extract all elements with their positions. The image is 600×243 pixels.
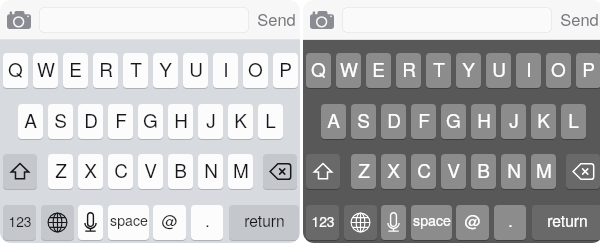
button[interactable]: F (108, 104, 133, 139)
button[interactable]: G (138, 104, 163, 139)
staticText: E (372, 55, 385, 82)
button[interactable]: P (273, 53, 298, 88)
button[interactable]: W (336, 53, 361, 88)
button[interactable]: J (501, 104, 526, 139)
staticText: M (233, 156, 249, 183)
staticText: E (69, 55, 82, 82)
button[interactable]: T (426, 53, 451, 88)
staticText: W (340, 55, 358, 82)
button[interactable]: U (486, 53, 511, 88)
button[interactable]: E (63, 53, 88, 88)
staticText: Z (55, 156, 67, 183)
button[interactable]: C (108, 154, 133, 189)
button[interactable]: N (501, 154, 526, 189)
staticText: return (547, 209, 588, 231)
button[interactable]: Change keyboard (41, 205, 74, 240)
staticText: J (206, 106, 216, 133)
staticText: H (477, 106, 491, 133)
button[interactable]: Camera (310, 11, 334, 29)
staticText: Q (8, 55, 23, 82)
button[interactable]: X (78, 154, 103, 189)
button[interactable]: Y (456, 53, 481, 88)
button[interactable]: G (441, 104, 466, 139)
button[interactable]: M (531, 154, 556, 189)
button[interactable]: R (93, 53, 118, 88)
button[interactable]: 123 (306, 205, 339, 240)
button[interactable]: Change keyboard (344, 205, 377, 240)
button[interactable]: H (471, 104, 496, 139)
button[interactable]: Q (306, 53, 331, 88)
button[interactable]: C (411, 154, 436, 189)
button[interactable]: Z (48, 154, 73, 189)
button[interactable]: Q (3, 53, 28, 88)
button[interactable]: . (494, 205, 526, 240)
staticText: P (279, 55, 292, 82)
button[interactable]: H (168, 104, 193, 139)
button[interactable]: I (213, 53, 238, 88)
button[interactable]: return (229, 205, 299, 240)
button[interactable]: A (18, 104, 43, 139)
button[interactable]: K (531, 104, 556, 139)
staticText: 123 (8, 211, 32, 231)
button[interactable]: Dictation (78, 205, 103, 240)
button[interactable]: U (183, 53, 208, 88)
button[interactable]: K (228, 104, 253, 139)
staticText: H (174, 106, 188, 133)
button[interactable]: . (191, 205, 223, 240)
staticText: Z (358, 156, 370, 183)
button[interactable]: L (258, 104, 283, 139)
staticText: D (387, 106, 401, 133)
button[interactable]: D (381, 104, 406, 139)
button[interactable]: 123 (3, 205, 36, 240)
button[interactable]: return (532, 205, 600, 240)
button[interactable]: N (198, 154, 223, 189)
button[interactable]: B (168, 154, 193, 189)
button[interactable]: W (33, 53, 58, 88)
button[interactable]: Shift (306, 154, 340, 189)
button[interactable]: Shift (3, 154, 37, 189)
button[interactable]: I (516, 53, 541, 88)
button[interactable]: space (411, 205, 452, 240)
button[interactable]: Camera (7, 11, 31, 29)
button[interactable]: X (381, 154, 406, 189)
button[interactable]: Backspace (566, 154, 600, 189)
button[interactable]: S (351, 104, 376, 139)
staticText: V (447, 156, 460, 183)
button[interactable]: O (243, 53, 268, 88)
button[interactable]: Send (557, 6, 600, 34)
button[interactable]: V (138, 154, 163, 189)
staticText: R (99, 55, 113, 82)
staticText: I (526, 55, 532, 82)
button[interactable]: Backspace (263, 154, 297, 189)
button[interactable]: F (411, 104, 436, 139)
button[interactable]: E (366, 53, 391, 88)
staticText: M (536, 156, 552, 183)
button[interactable]: @ (456, 205, 489, 240)
staticText: Y (159, 55, 172, 82)
staticText: K (234, 106, 247, 133)
button[interactable]: space (108, 205, 149, 240)
button[interactable]: B (471, 154, 496, 189)
button[interactable] (342, 7, 552, 33)
staticText: Y (462, 55, 475, 82)
button[interactable]: J (198, 104, 223, 139)
button[interactable]: O (546, 53, 571, 88)
button[interactable]: D (78, 104, 103, 139)
button[interactable]: V (441, 154, 466, 189)
button[interactable]: Dictation (381, 205, 406, 240)
staticText: F (418, 106, 430, 133)
staticText: T (130, 55, 142, 82)
button[interactable]: Z (351, 154, 376, 189)
button[interactable]: M (228, 154, 253, 189)
button[interactable]: P (576, 53, 600, 88)
button[interactable]: T (123, 53, 148, 88)
button[interactable] (39, 7, 249, 33)
button[interactable]: L (561, 104, 586, 139)
button[interactable]: R (396, 53, 421, 88)
staticText: A (24, 106, 37, 133)
button[interactable]: @ (153, 205, 186, 240)
button[interactable]: S (48, 104, 73, 139)
button[interactable]: A (321, 104, 346, 139)
button[interactable]: Y (153, 53, 178, 88)
button[interactable]: Send (254, 6, 298, 34)
